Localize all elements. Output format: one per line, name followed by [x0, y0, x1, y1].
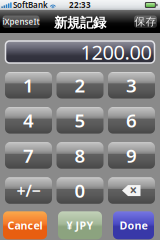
button[interactable]: Done: [113, 211, 154, 239]
staticText: 6: [126, 108, 137, 133]
staticText: 7: [23, 143, 34, 168]
staticText: 4: [23, 108, 34, 133]
staticText: 2: [74, 73, 85, 98]
staticText: 保存: [134, 15, 156, 28]
staticText: ×: [129, 181, 137, 199]
staticText: +/−: [16, 180, 40, 201]
button[interactable]: 6: [108, 107, 155, 134]
staticText: 1200.00: [80, 39, 151, 65]
staticText: Done: [119, 218, 147, 232]
staticText: 0: [74, 178, 85, 203]
button[interactable]: +/−: [5, 177, 52, 204]
staticText: ¥ JPY: [66, 218, 93, 232]
button[interactable]: ¥ JPY: [58, 211, 102, 239]
button[interactable]: 9: [108, 142, 155, 169]
button[interactable]: 1: [5, 72, 52, 98]
staticText: 22:33: [69, 0, 91, 10]
button[interactable]: 3: [108, 72, 155, 98]
staticText: 新規記録: [54, 14, 106, 31]
button[interactable]: 7: [5, 142, 52, 169]
button[interactable]: 2: [56, 72, 103, 98]
staticText: Cancel: [7, 218, 42, 232]
staticText: 5: [74, 108, 85, 133]
button[interactable]: 8: [56, 142, 103, 169]
button[interactable]: iXpenseIt: [2, 15, 39, 28]
button[interactable]: 0: [56, 177, 103, 204]
staticText: 9: [126, 143, 137, 168]
staticText: 1: [23, 73, 34, 98]
staticText: 8: [74, 143, 85, 168]
staticText: 3: [126, 73, 137, 98]
button[interactable]: 5: [56, 107, 103, 134]
staticText: iXpenseIt: [2, 16, 39, 27]
staticText: SoftBank: [13, 0, 48, 10]
button[interactable]: 保存: [134, 15, 157, 28]
button[interactable]: 4: [5, 107, 52, 134]
button[interactable]: Delete: [108, 177, 155, 204]
button[interactable]: Cancel: [3, 211, 47, 239]
